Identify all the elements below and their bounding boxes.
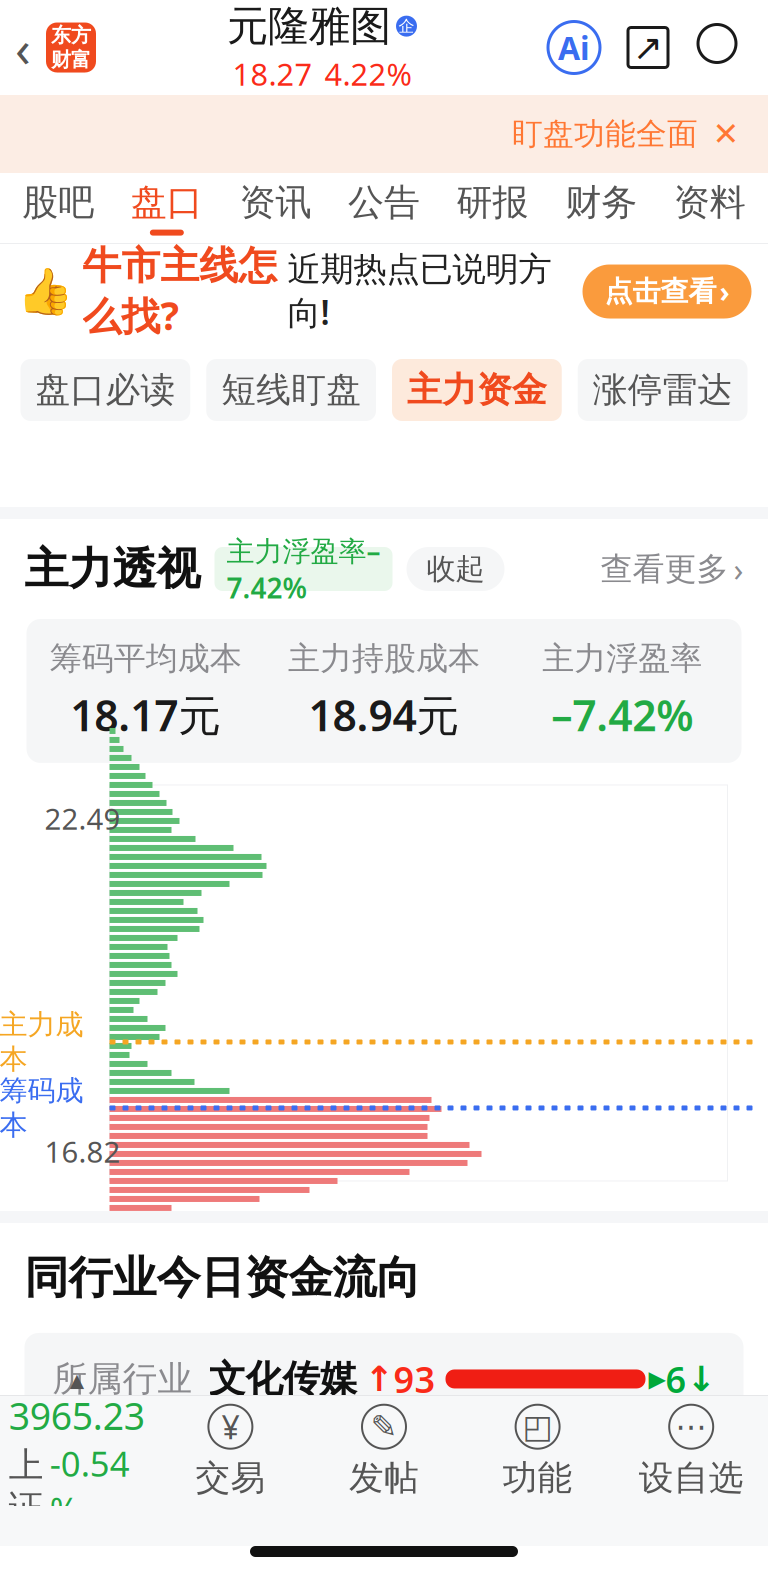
button[interactable]: 资料 [655,173,764,243]
staticText: 企 [398,16,414,36]
button[interactable]: Close promo [698,106,754,162]
staticText: 研报 [457,180,529,225]
staticText: 财富 [51,47,91,72]
staticText: 文化传媒 [208,1356,356,1402]
button[interactable]: 上证指数 [0,1396,154,1506]
button[interactable]: 盘口必读 [20,359,190,421]
staticText: 牛市主线怎么找? [82,242,277,341]
staticText: 筹码平均成本 [50,639,242,678]
staticText: 公告 [348,180,420,225]
staticText: 收起 [426,551,484,587]
staticText: 资料 [674,180,746,225]
staticText: ◰ [523,1408,553,1445]
staticText: -0.54% [50,1440,130,1532]
staticText: 盯盘功能全面 [512,115,698,153]
staticText: 筹码成本 [0,1074,83,1142]
staticText: 财务 [565,180,637,225]
staticText: 18.94元 [308,686,459,743]
staticText: 主力持股成本 [288,639,480,678]
staticText: 3965.23 [9,1391,145,1440]
staticText: 18.27 [232,53,312,94]
staticText: 短线盯盘 [221,369,361,411]
staticText: 盘口必读 [35,369,175,411]
staticText: 6 [665,1355,686,1403]
button[interactable]: ✎ [307,1396,461,1506]
button[interactable]: ◰ [461,1396,614,1506]
button[interactable]: 资讯 [221,173,330,243]
staticText: ‹ [15,14,31,81]
staticText: 股吧 [22,180,94,225]
staticText: 盘口 [131,180,203,225]
button[interactable]: 主力资金 [392,359,562,421]
staticText: ↗ [633,27,663,68]
staticText: 同行业今日资金流向 [24,1251,420,1305]
button[interactable]: 盘口 [113,173,221,243]
staticText: 所属行业 [52,1358,192,1400]
staticText: 东方 [51,23,91,47]
staticText: 👍 [16,266,72,317]
staticText: 22.49 [44,799,120,838]
staticText: 查看更多 [600,549,728,589]
staticText: ✎ [370,1408,397,1445]
button[interactable]: Back [0,17,46,77]
button[interactable]: AI assistant [548,21,600,73]
button[interactable]: Search [696,22,746,72]
staticText: ✕ [712,116,739,152]
staticText: 主力透视 [24,542,200,596]
staticText: › [733,548,743,590]
staticText: ↓ [686,1359,715,1399]
staticText: 18.17元 [70,686,221,743]
staticText: 主力浮盈率–7.42% [226,532,380,606]
staticText: 发帖 [349,1457,419,1499]
button[interactable]: 短线盯盘 [206,359,376,421]
staticText: 主力资金 [407,369,547,411]
staticText: 功能 [503,1457,573,1499]
button[interactable]: 👍 [0,244,768,339]
staticText: 主力浮盈率 [542,639,702,678]
staticText: ▲ [70,1370,84,1391]
button[interactable]: 股吧 [4,173,113,243]
staticText: 资讯 [239,180,311,225]
staticText: 4.22% [324,53,411,94]
button[interactable]: 涨停雷达 [578,359,748,421]
button[interactable]: 研报 [438,173,547,243]
button[interactable]: 查看更多 [600,548,743,590]
staticText: 上证 [9,1444,44,1529]
button[interactable]: 财务 [547,173,655,243]
staticText: 主力成本 [0,1008,83,1076]
staticText: 16.82 [44,1132,120,1171]
staticText: Ai [558,26,590,69]
staticText: ▶ [648,1366,665,1392]
staticText: 涨停雷达 [593,369,733,411]
staticText: › [719,273,729,310]
staticText: 元隆雅图 [227,1,391,52]
button[interactable]: Share [626,25,670,69]
staticText: ⋯ [675,1408,707,1445]
staticText: 近期热点已说明方向! [287,249,551,334]
button[interactable]: ⋯ [614,1396,768,1506]
button[interactable]: ¥ [154,1396,307,1506]
staticText: 设自选 [639,1457,744,1499]
staticText: 点击查看 [604,274,716,309]
button[interactable]: 东方财富 [46,22,96,72]
staticText: –7.42% [551,686,693,743]
button[interactable]: 所属行业 [0,1333,768,1425]
staticText: 93 [393,1355,435,1403]
staticText: 交易 [195,1457,265,1499]
staticText: ↑ [364,1359,393,1399]
staticText: ¥ [221,1405,239,1448]
button[interactable]: 公告 [330,173,438,243]
button[interactable]: 收起 [406,547,504,591]
